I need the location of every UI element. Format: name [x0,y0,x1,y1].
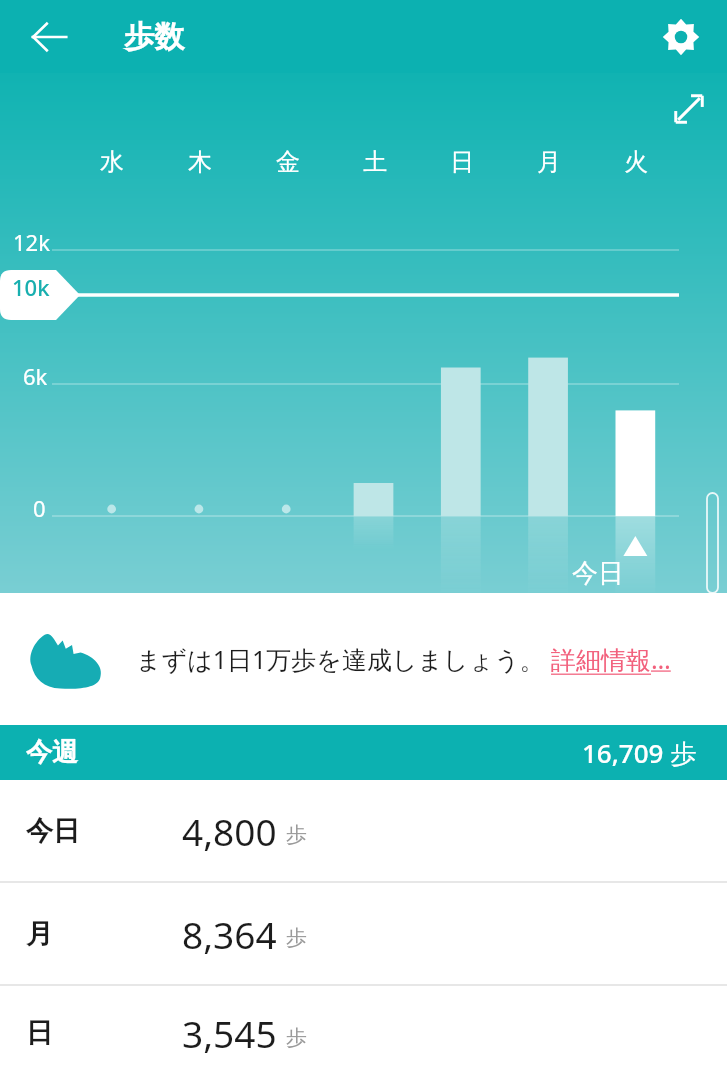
button[interactable]: 詳細情報… [551,642,671,676]
staticText: 土 [363,147,387,177]
button[interactable]: Expand chart [659,79,719,139]
staticText: 12k [13,227,50,257]
staticText: 月 [26,917,53,951]
staticText: 今日 [26,814,80,848]
staticText: 3,545 [182,1008,277,1058]
staticText: 歩 [286,1025,307,1051]
button[interactable]: Back [20,8,78,66]
staticText: 日 [26,1016,53,1050]
staticText: 16,709 歩 [582,735,697,771]
staticText: 8,364 [182,909,277,959]
staticText: 歩数 [124,18,184,56]
staticText: まずは1日1万歩を達成しましょう。 [136,642,545,676]
staticText: 金 [276,147,300,177]
staticText: 今週 [26,736,78,769]
staticText: 木 [188,147,212,177]
staticText: 火 [624,147,648,177]
staticText: 歩 [286,822,307,848]
button[interactable]: 月 [0,883,727,984]
button[interactable]: 今日 [0,780,727,881]
button[interactable]: まずは1日1万歩を達成しましょう。 [0,593,727,725]
button[interactable]: 日 [0,986,727,1080]
button[interactable]: Settings [651,7,711,67]
staticText: 6k [23,361,48,391]
staticText: 4,800 [182,806,277,856]
staticText: 月 [537,147,561,177]
staticText: 今日 [572,557,624,590]
staticText: 10k [12,272,50,302]
staticText: 水 [100,147,124,177]
staticText: 歩 [286,925,307,951]
staticText: 日 [450,147,474,177]
staticText: 0 [33,493,46,523]
button[interactable]: 今週 [0,725,727,780]
